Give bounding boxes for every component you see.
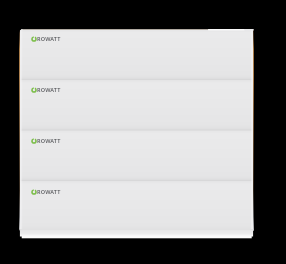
button[interactable]: Growatt battery stack [19,29,254,239]
staticText: ROWATT [37,35,61,42]
staticText: ROWATT [37,137,61,144]
staticText: ROWATT [37,86,61,93]
staticText: ROWATT [37,188,61,195]
